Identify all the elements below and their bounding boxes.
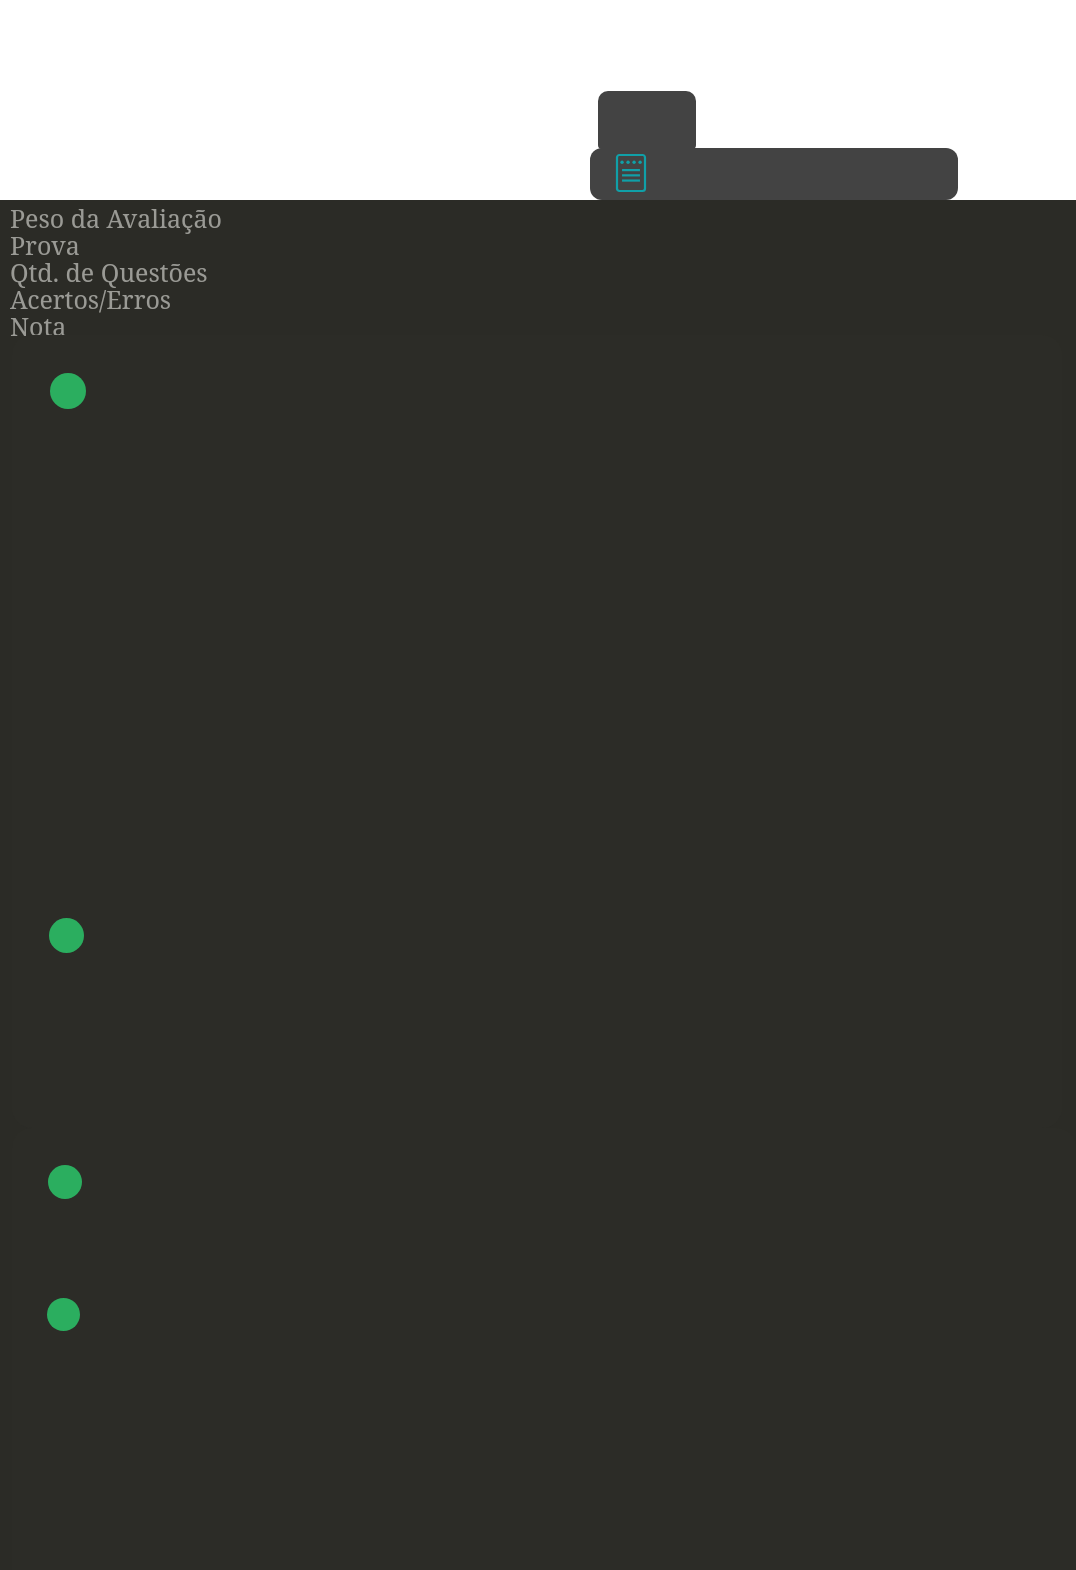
button[interactable]: Prova	[10, 228, 80, 262]
button[interactable]: Status indicator	[49, 918, 84, 953]
button[interactable]: Status indicator	[12, 1128, 1076, 1570]
button[interactable]: Status indicator	[50, 373, 86, 409]
button[interactable]: Status indicator	[47, 1298, 80, 1331]
button[interactable]: Qtd. de Questões	[10, 255, 208, 289]
staticText: Qtd. de Questões	[10, 255, 208, 289]
button[interactable]: Toolbar	[590, 148, 958, 200]
button[interactable]: Acertos/Erros	[10, 282, 172, 316]
button[interactable]: Status indicator	[12, 335, 1062, 1128]
staticText: Acertos/Erros	[10, 282, 172, 316]
button[interactable]: Menu	[598, 91, 696, 149]
button[interactable]: Peso da Avaliação	[10, 201, 222, 235]
staticText: Prova	[10, 228, 80, 262]
button[interactable]: Nota	[10, 309, 67, 343]
staticText: Nota	[10, 309, 67, 343]
button[interactable]: Status indicator	[48, 1165, 82, 1199]
button[interactable]: Notes	[615, 153, 647, 193]
staticText: Peso da Avaliação	[10, 201, 222, 235]
